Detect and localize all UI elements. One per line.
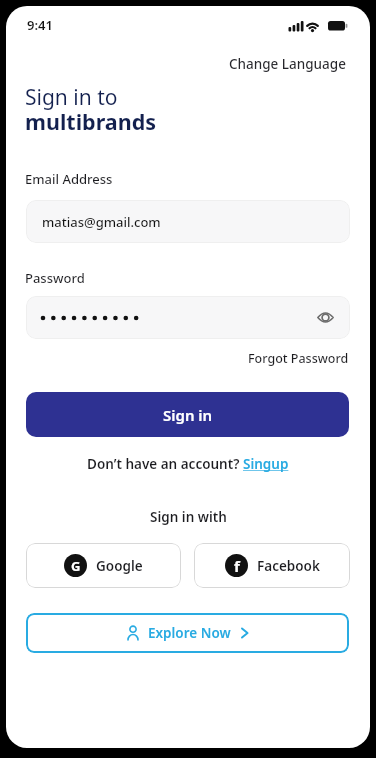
staticText: Forgot Password — [248, 350, 349, 367]
staticText: Explore Now — [148, 624, 231, 642]
staticText: Google — [96, 557, 143, 575]
button[interactable]: Change Language — [229, 55, 346, 73]
staticText: Sign in to — [25, 83, 118, 112]
button[interactable]: f — [194, 543, 350, 588]
button[interactable]: G — [26, 543, 181, 588]
staticText: f — [234, 556, 240, 576]
button[interactable]: Explore Now — [26, 613, 349, 653]
staticText: 9:41 — [27, 16, 53, 34]
button[interactable] — [26, 296, 350, 339]
button[interactable]: Singup — [243, 455, 289, 473]
staticText: G — [71, 557, 81, 575]
staticText: Email Address — [25, 170, 113, 188]
button[interactable]: Sign in — [26, 392, 349, 437]
staticText: Sign in — [163, 405, 213, 425]
staticText: Singup — [243, 455, 289, 473]
staticText: Facebook — [257, 557, 320, 575]
button[interactable]: matias@gmail.com — [26, 200, 350, 243]
staticText: Sign in with — [150, 508, 227, 526]
staticText: Don’t have an account? — [87, 455, 243, 473]
staticText: Password — [25, 269, 85, 287]
staticText: Change Language — [229, 55, 346, 73]
staticText: multibrands — [25, 107, 157, 136]
staticText: matias@gmail.com — [42, 213, 161, 231]
button[interactable]: Forgot Password — [248, 350, 349, 367]
